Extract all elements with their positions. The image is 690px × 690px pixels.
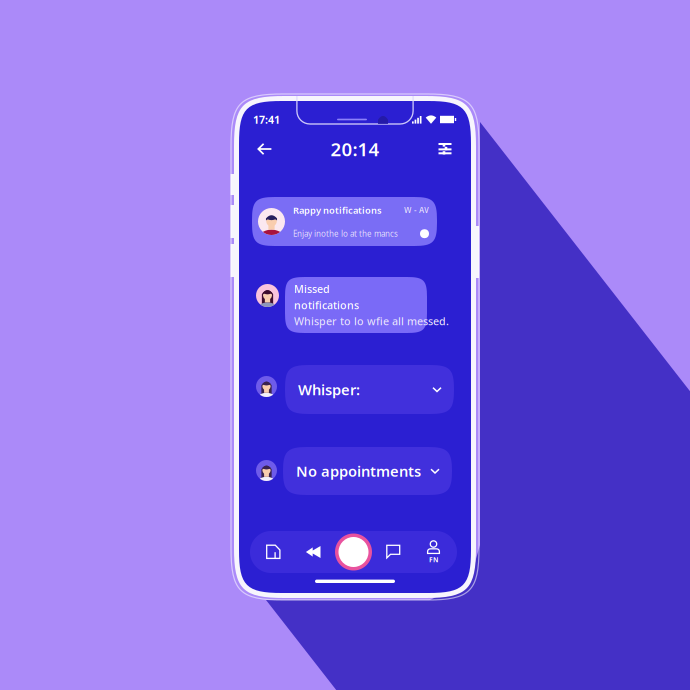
button[interactable]: Messages bbox=[377, 536, 409, 568]
button[interactable]: Record bbox=[332, 531, 374, 573]
staticText: notifications bbox=[294, 298, 359, 312]
staticText: Whisper to lo wfie all messed. bbox=[294, 314, 449, 328]
button[interactable]: Profile bbox=[417, 536, 449, 568]
staticText: 20:14 bbox=[330, 137, 379, 161]
button[interactable]: Rewind bbox=[297, 536, 329, 568]
staticText: Missed bbox=[294, 282, 330, 296]
staticText: FN bbox=[429, 555, 438, 564]
button[interactable]: Documents bbox=[257, 536, 289, 568]
button[interactable]: Rappy notifications bbox=[252, 197, 437, 246]
button[interactable]: Missed bbox=[285, 277, 427, 333]
staticText: Rappy notifications bbox=[293, 204, 382, 216]
staticText: Whisper: bbox=[298, 380, 360, 399]
staticText: W - AV bbox=[404, 205, 429, 215]
button[interactable]: Filter bbox=[431, 135, 459, 163]
staticText: 17:41 bbox=[253, 112, 280, 127]
button[interactable]: No appointments bbox=[283, 447, 452, 495]
staticText: No appointments bbox=[296, 461, 421, 481]
button[interactable]: Whisper: bbox=[285, 365, 454, 414]
staticText: Enjay inothe lo at the mancs bbox=[293, 228, 398, 239]
button[interactable]: Back bbox=[251, 135, 279, 163]
